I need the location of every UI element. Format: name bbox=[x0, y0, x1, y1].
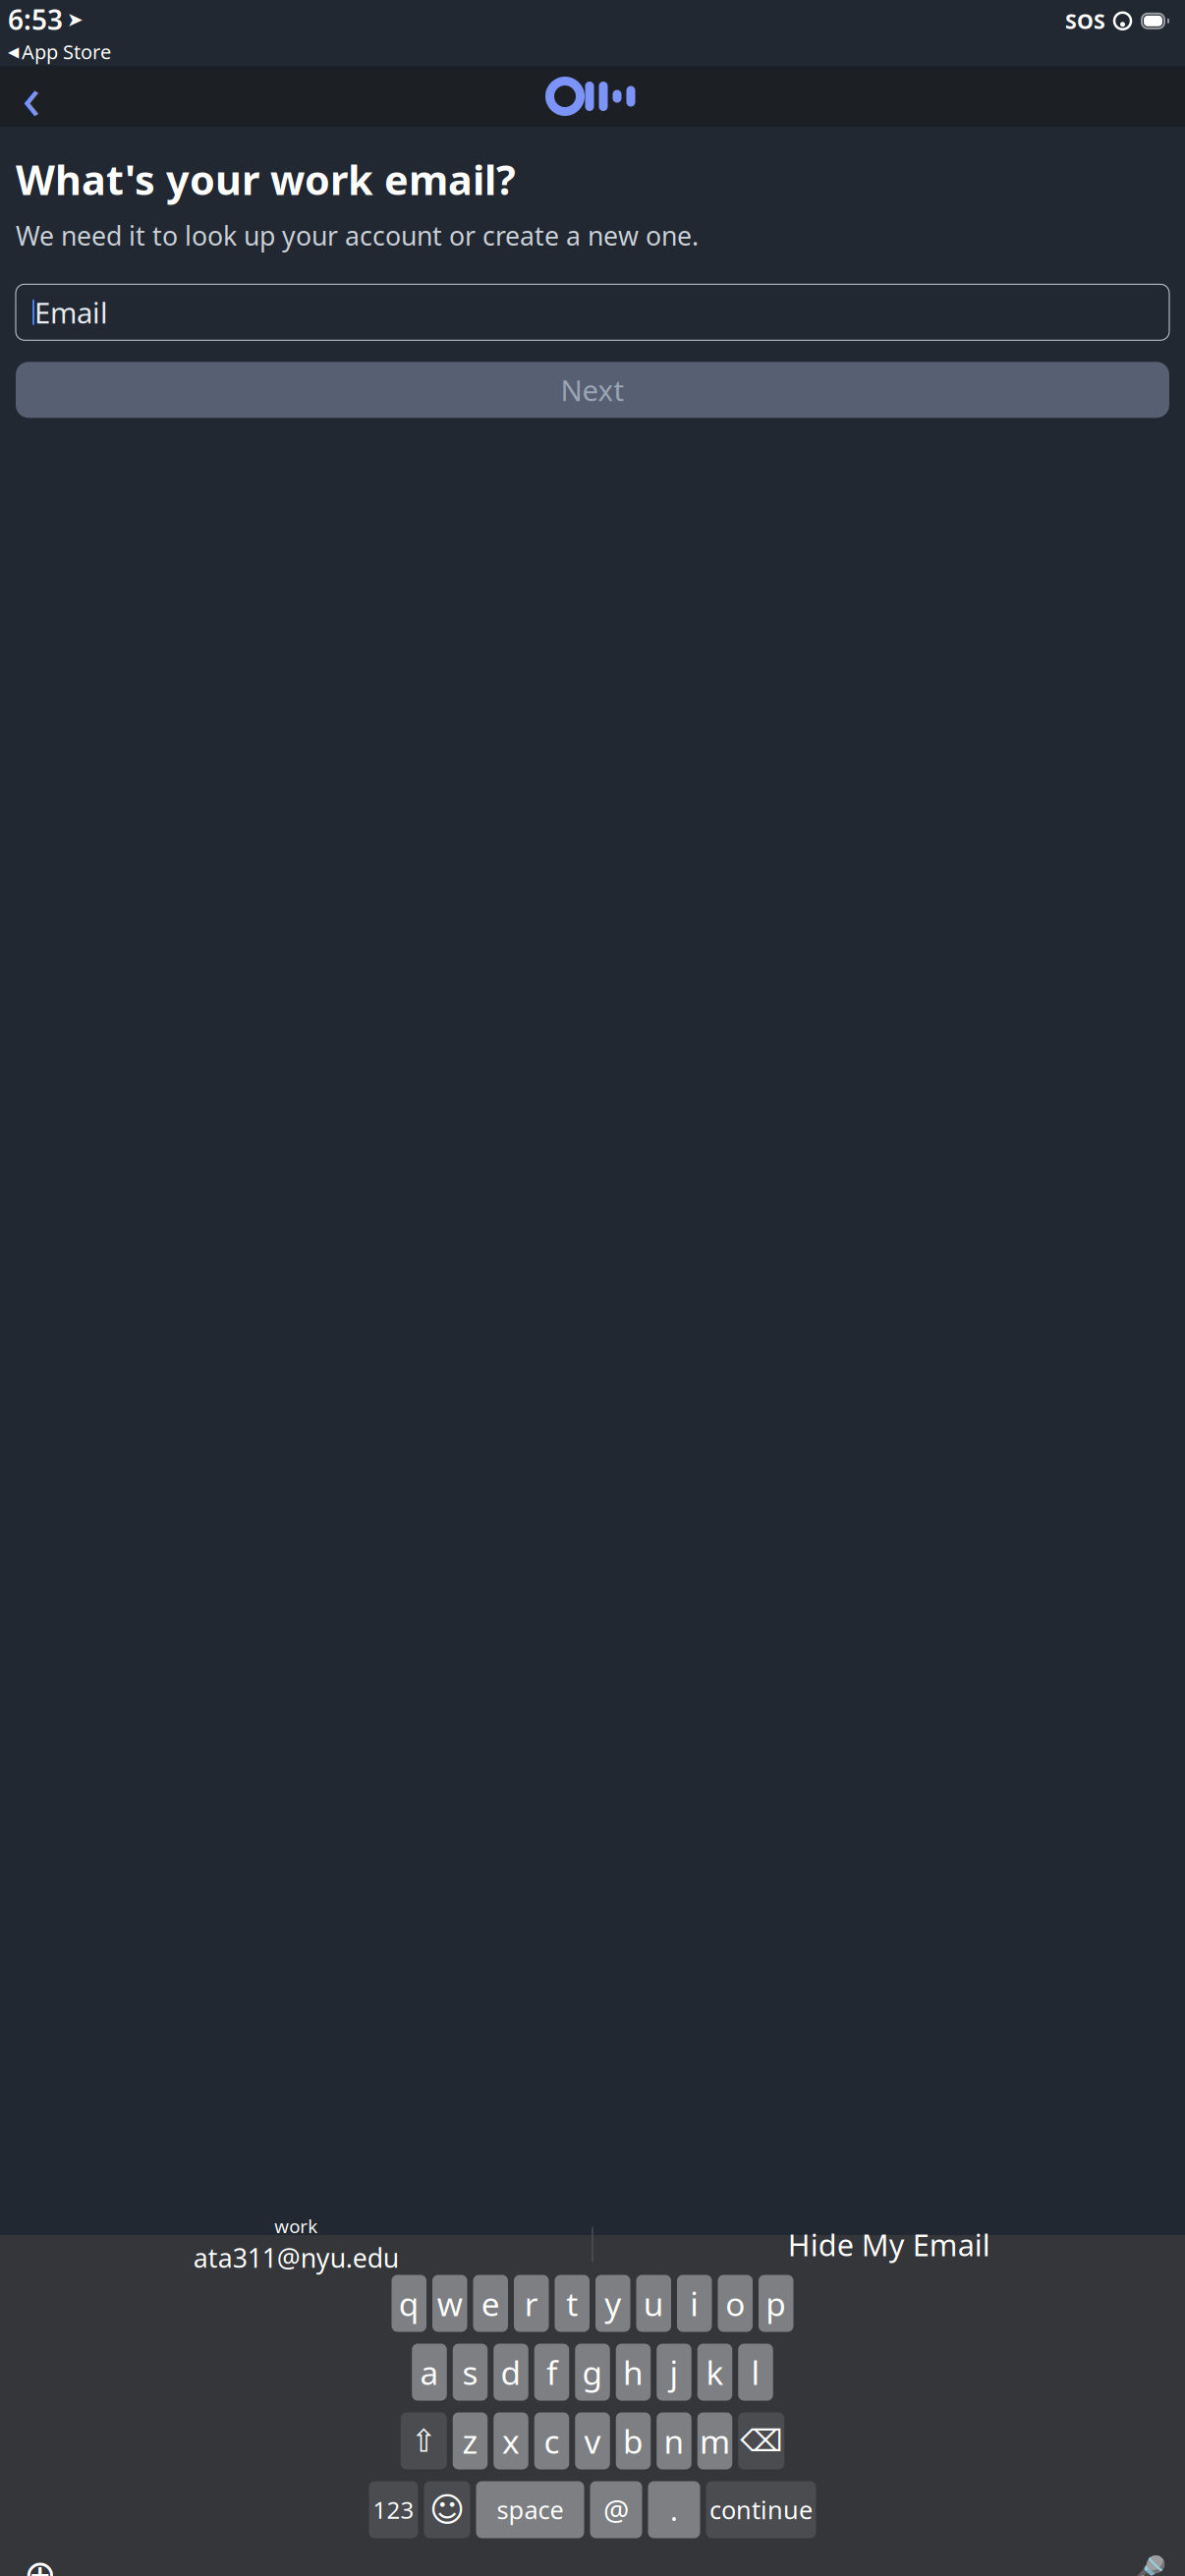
button[interactable]: continue bbox=[706, 2481, 816, 2538]
button[interactable]: ⌫ bbox=[738, 2412, 784, 2469]
staticText: o bbox=[725, 2282, 745, 2325]
staticText: Hide My Email bbox=[788, 2224, 990, 2264]
staticText: . bbox=[670, 2491, 678, 2529]
staticText: u bbox=[643, 2282, 664, 2325]
button[interactable]: y bbox=[595, 2275, 630, 2332]
staticText: f bbox=[546, 2350, 557, 2394]
button[interactable]: o bbox=[718, 2275, 753, 2332]
staticText: l bbox=[751, 2350, 760, 2394]
staticText: 🎤 bbox=[1123, 2554, 1167, 2576]
staticText: c bbox=[544, 2419, 560, 2463]
button[interactable]: m bbox=[697, 2412, 732, 2469]
staticText: SOS bbox=[1065, 7, 1105, 35]
button[interactable]: c bbox=[534, 2412, 569, 2469]
staticText: Email bbox=[34, 293, 108, 331]
staticText: w bbox=[437, 2282, 463, 2325]
staticText: ‹ bbox=[22, 56, 41, 136]
staticText: App Store bbox=[22, 39, 111, 65]
staticText: 123 bbox=[373, 2494, 414, 2525]
button[interactable]: a bbox=[412, 2344, 447, 2401]
button[interactable]: b bbox=[616, 2412, 651, 2469]
staticText: e bbox=[481, 2282, 500, 2325]
button[interactable]: Change keyboard bbox=[18, 2552, 63, 2576]
staticText: p bbox=[766, 2282, 786, 2325]
button[interactable]: j bbox=[657, 2344, 691, 2401]
button[interactable]: Email bbox=[16, 284, 1169, 340]
staticText: d bbox=[501, 2350, 521, 2394]
button[interactable]: w bbox=[432, 2275, 467, 2332]
button[interactable]: space bbox=[476, 2481, 584, 2538]
staticText: ◀ bbox=[8, 44, 19, 60]
button[interactable]: s bbox=[453, 2344, 488, 2401]
staticText: ⇧ bbox=[411, 2423, 437, 2459]
staticText: x bbox=[502, 2419, 520, 2463]
staticText: h bbox=[623, 2350, 644, 2394]
button[interactable]: Next bbox=[16, 362, 1169, 418]
button[interactable]: p bbox=[759, 2275, 793, 2332]
button[interactable]: @ bbox=[590, 2481, 642, 2538]
button[interactable]: h bbox=[616, 2344, 651, 2401]
staticText: ➤ bbox=[67, 8, 84, 31]
button[interactable]: u bbox=[636, 2275, 671, 2332]
staticText: i bbox=[690, 2282, 699, 2325]
staticText: j bbox=[670, 2350, 678, 2394]
staticText: y bbox=[604, 2282, 621, 2325]
button[interactable]: 123 bbox=[369, 2481, 418, 2538]
staticText: space bbox=[497, 2493, 564, 2526]
staticText: @ bbox=[603, 2491, 629, 2529]
button[interactable]: work bbox=[0, 2217, 592, 2272]
button[interactable]: Hide My Email bbox=[593, 2217, 1185, 2272]
button[interactable]: g bbox=[575, 2344, 610, 2401]
staticText: q bbox=[399, 2282, 419, 2325]
staticText: a bbox=[420, 2350, 439, 2394]
button[interactable]: i bbox=[677, 2275, 712, 2332]
button[interactable]: q bbox=[392, 2275, 426, 2332]
button[interactable]: Back bbox=[6, 71, 57, 122]
staticText: t bbox=[566, 2282, 578, 2325]
staticText: g bbox=[582, 2350, 603, 2394]
button[interactable]: k bbox=[697, 2344, 732, 2401]
button[interactable]: ⇧ bbox=[401, 2412, 447, 2469]
button[interactable]: d bbox=[493, 2344, 528, 2401]
button[interactable]: r bbox=[514, 2275, 549, 2332]
staticText: ☺ bbox=[429, 2490, 465, 2529]
button[interactable]: l bbox=[738, 2344, 773, 2401]
button[interactable]: f bbox=[534, 2344, 569, 2401]
staticText: continue bbox=[709, 2493, 813, 2526]
staticText: 6:53 bbox=[8, 1, 63, 38]
button[interactable]: z bbox=[453, 2412, 488, 2469]
staticText: ⊕ bbox=[24, 2552, 57, 2576]
staticText: What's your work email? bbox=[16, 152, 516, 206]
button[interactable]: e bbox=[473, 2275, 508, 2332]
staticText: Next bbox=[561, 371, 624, 409]
button[interactable]: v bbox=[575, 2412, 610, 2469]
staticText: ⌫ bbox=[740, 2424, 782, 2458]
staticText: s bbox=[462, 2350, 478, 2394]
staticText: k bbox=[706, 2350, 724, 2394]
staticText: ata311@nyu.edu bbox=[193, 2240, 399, 2275]
staticText: b bbox=[623, 2419, 644, 2463]
staticText: v bbox=[584, 2419, 601, 2463]
button[interactable]: ☺ bbox=[424, 2481, 470, 2538]
staticText: r bbox=[525, 2282, 538, 2325]
staticText: We need it to look up your account or cr… bbox=[16, 218, 699, 253]
staticText: z bbox=[462, 2419, 478, 2463]
staticText: work bbox=[274, 2214, 318, 2238]
button[interactable]: Dictate bbox=[1122, 2552, 1167, 2576]
staticText: m bbox=[700, 2419, 730, 2463]
button[interactable]: . bbox=[648, 2481, 700, 2538]
staticText: n bbox=[664, 2419, 684, 2463]
button[interactable]: n bbox=[657, 2412, 691, 2469]
button[interactable]: x bbox=[493, 2412, 528, 2469]
button[interactable]: t bbox=[555, 2275, 590, 2332]
